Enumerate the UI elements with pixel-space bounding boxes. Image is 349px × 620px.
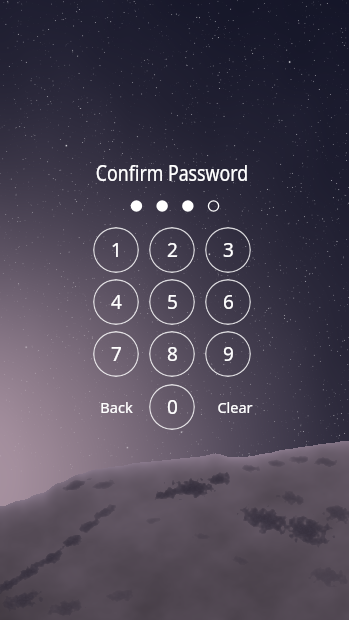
staticText: 1 [111,237,122,263]
button[interactable]: 5 [149,279,195,325]
staticText: 8 [167,341,178,367]
button[interactable]: 7 [93,331,139,377]
staticText: Back [100,397,133,417]
button[interactable]: 0 [149,384,195,430]
staticText: 0 [167,394,178,420]
staticText: 3 [223,237,234,263]
button[interactable]: 1 [93,227,139,273]
button[interactable]: 3 [205,227,251,273]
button[interactable]: 9 [205,331,251,377]
staticText: 5 [167,289,178,315]
staticText: 4 [111,289,122,315]
staticText: Clear [217,397,253,417]
staticText: 9 [223,341,234,367]
button[interactable]: 4 [93,279,139,325]
staticText: 2 [167,237,178,263]
button[interactable]: 8 [149,331,195,377]
button[interactable]: Clear [208,385,262,429]
staticText: 6 [223,289,234,315]
button[interactable]: Back [89,385,143,429]
staticText: Confirm Password [81,158,263,188]
button[interactable]: 2 [149,227,195,273]
button[interactable]: 6 [205,279,251,325]
staticText: 7 [111,341,122,367]
